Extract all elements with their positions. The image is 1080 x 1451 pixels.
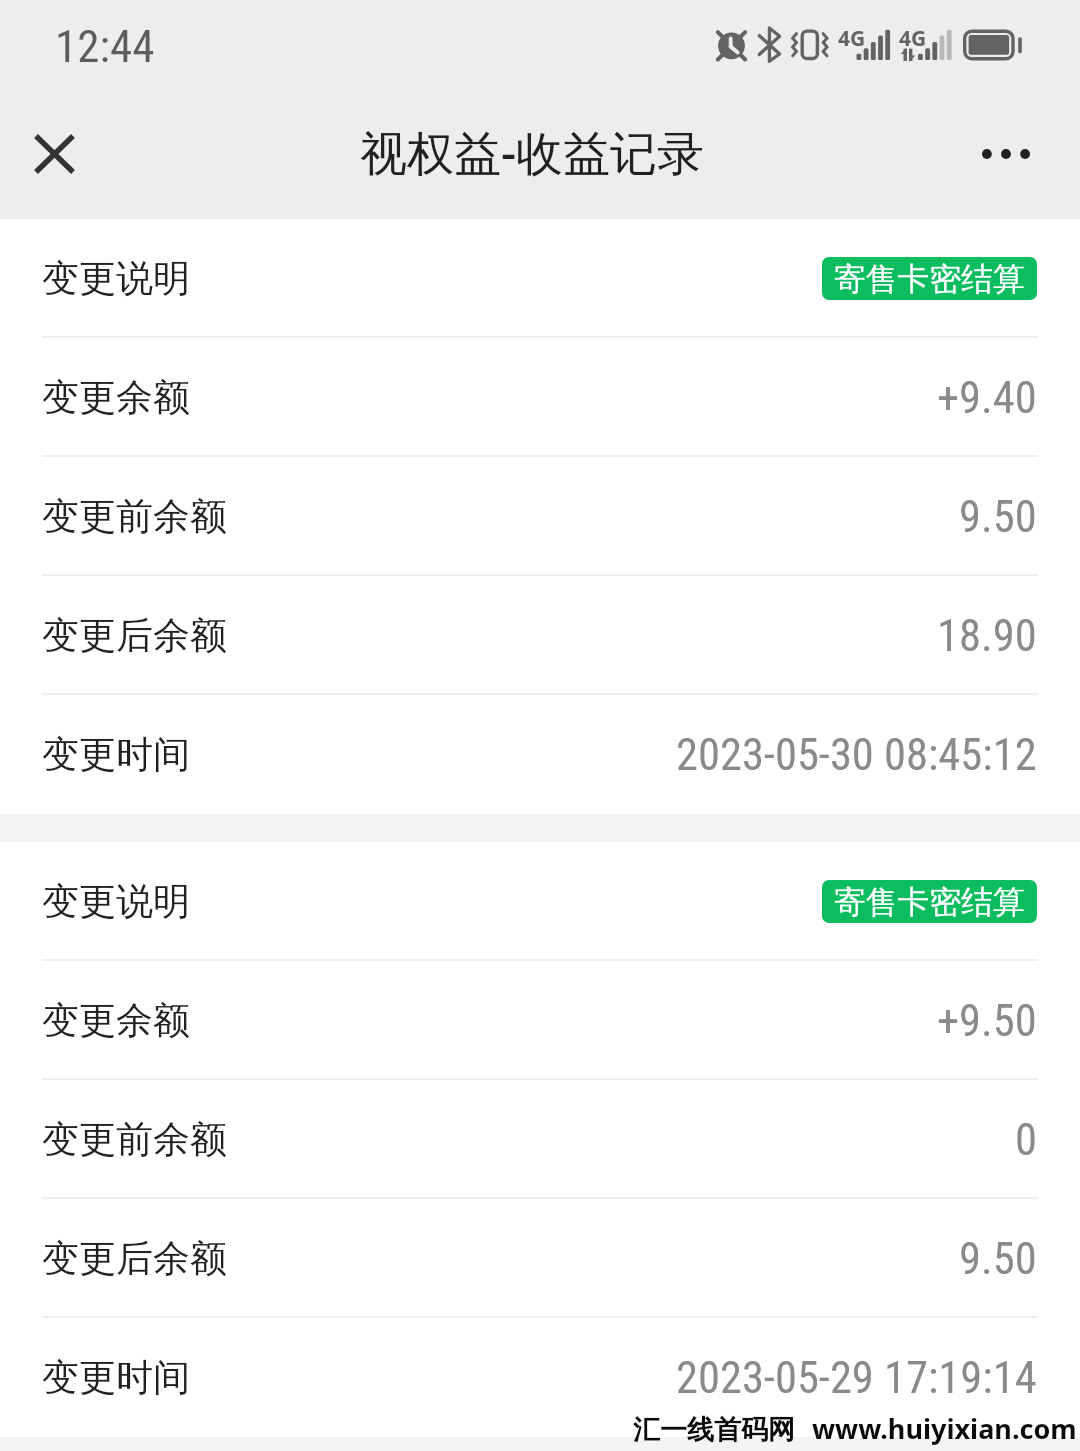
staticText: 18.90 bbox=[937, 610, 1037, 662]
staticText: 2023-05-30 08:45:12 bbox=[676, 729, 1037, 781]
staticText: 汇一线首码网 bbox=[633, 1413, 795, 1447]
staticText: 寄售卡密结算 bbox=[834, 259, 1025, 299]
staticText: 变更时间 bbox=[42, 731, 190, 778]
button[interactable]: More options bbox=[966, 118, 1046, 190]
staticText: +9.40 bbox=[937, 372, 1037, 424]
button[interactable]: 变更时间 bbox=[0, 1318, 1080, 1437]
staticText: 寄售卡密结算 bbox=[834, 882, 1025, 922]
button[interactable]: 变更后余额 bbox=[0, 1199, 1080, 1318]
staticText: +9.50 bbox=[937, 995, 1037, 1047]
staticText: 变更余额 bbox=[42, 997, 190, 1044]
button[interactable]: 变更余额 bbox=[0, 961, 1080, 1080]
staticText: 视权益-收益记录 bbox=[360, 120, 705, 184]
staticText: 2023-05-29 17:19:14 bbox=[676, 1352, 1037, 1404]
button[interactable]: 变更余额 bbox=[0, 338, 1080, 457]
button[interactable]: 变更时间 bbox=[0, 695, 1080, 814]
staticText: 4G bbox=[838, 24, 866, 53]
staticText: 变更前余额 bbox=[42, 493, 227, 540]
button[interactable]: 变更前余额 bbox=[0, 1080, 1080, 1199]
staticText: 0 bbox=[1015, 1114, 1037, 1166]
staticText: 变更时间 bbox=[42, 1354, 190, 1401]
staticText: 变更后余额 bbox=[42, 612, 227, 659]
button[interactable]: 变更说明 bbox=[0, 219, 1080, 338]
button[interactable]: 变更前余额 bbox=[0, 457, 1080, 576]
staticText: 变更余额 bbox=[42, 374, 190, 421]
staticText: www.huiyixian.com bbox=[812, 1410, 1077, 1447]
staticText: 变更前余额 bbox=[42, 1116, 227, 1163]
button[interactable]: Close bbox=[18, 118, 90, 190]
button[interactable]: 变更说明 bbox=[0, 842, 1080, 961]
staticText: 12:44 bbox=[55, 20, 155, 73]
staticText: 变更说明 bbox=[42, 878, 190, 925]
staticText: 9.50 bbox=[959, 1233, 1037, 1285]
staticText: 变更后余额 bbox=[42, 1235, 227, 1282]
staticText: 9.50 bbox=[959, 491, 1037, 543]
button[interactable]: 变更后余额 bbox=[0, 576, 1080, 695]
staticText: 4G bbox=[899, 24, 927, 53]
staticText: 变更说明 bbox=[42, 255, 190, 302]
